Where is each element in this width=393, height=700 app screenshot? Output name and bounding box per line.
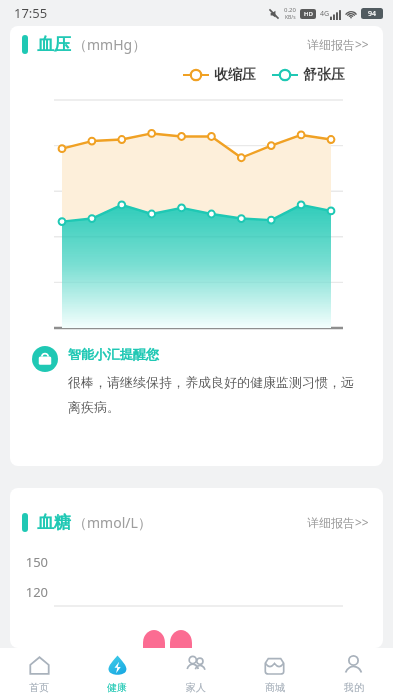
staticText: 详细报告>>	[307, 36, 369, 52]
staticText: 智能小汇提醒您	[68, 346, 159, 362]
button[interactable]: 首页	[0, 648, 78, 700]
staticText: HD	[304, 10, 313, 18]
button[interactable]: 详细报告>>	[305, 509, 371, 535]
staticText: 150	[20, 553, 48, 571]
staticText: 详细报告>>	[307, 514, 369, 530]
staticText: 家人	[186, 681, 206, 694]
button[interactable]: 商城	[235, 648, 314, 700]
staticText: 商城	[265, 681, 285, 694]
button[interactable]: 我的	[314, 648, 393, 700]
staticText: 健康	[107, 681, 127, 694]
staticText: （mmol/L）	[73, 513, 152, 532]
staticText: 4G	[320, 9, 330, 19]
staticText: 收缩压	[214, 66, 256, 84]
staticText: 很棒，请继续保持，养成良好的健康监测习惯，远离疾病。	[68, 374, 363, 416]
staticText: 0.20	[284, 6, 296, 14]
button[interactable]: 家人	[156, 648, 235, 700]
button[interactable]: 详细报告>>	[305, 31, 371, 57]
staticText: 血糖	[37, 512, 71, 533]
staticText: 我的	[344, 681, 364, 694]
button[interactable]: 健康	[78, 648, 156, 700]
staticText: 首页	[29, 681, 49, 694]
staticText: （mmHg）	[73, 35, 147, 54]
staticText: 94	[368, 9, 377, 19]
staticText: 120	[20, 583, 48, 601]
staticText: 17:55	[14, 4, 48, 22]
staticText: 血压	[37, 34, 71, 55]
staticText: 舒张压	[303, 66, 345, 84]
staticText: KB/s	[285, 14, 296, 21]
